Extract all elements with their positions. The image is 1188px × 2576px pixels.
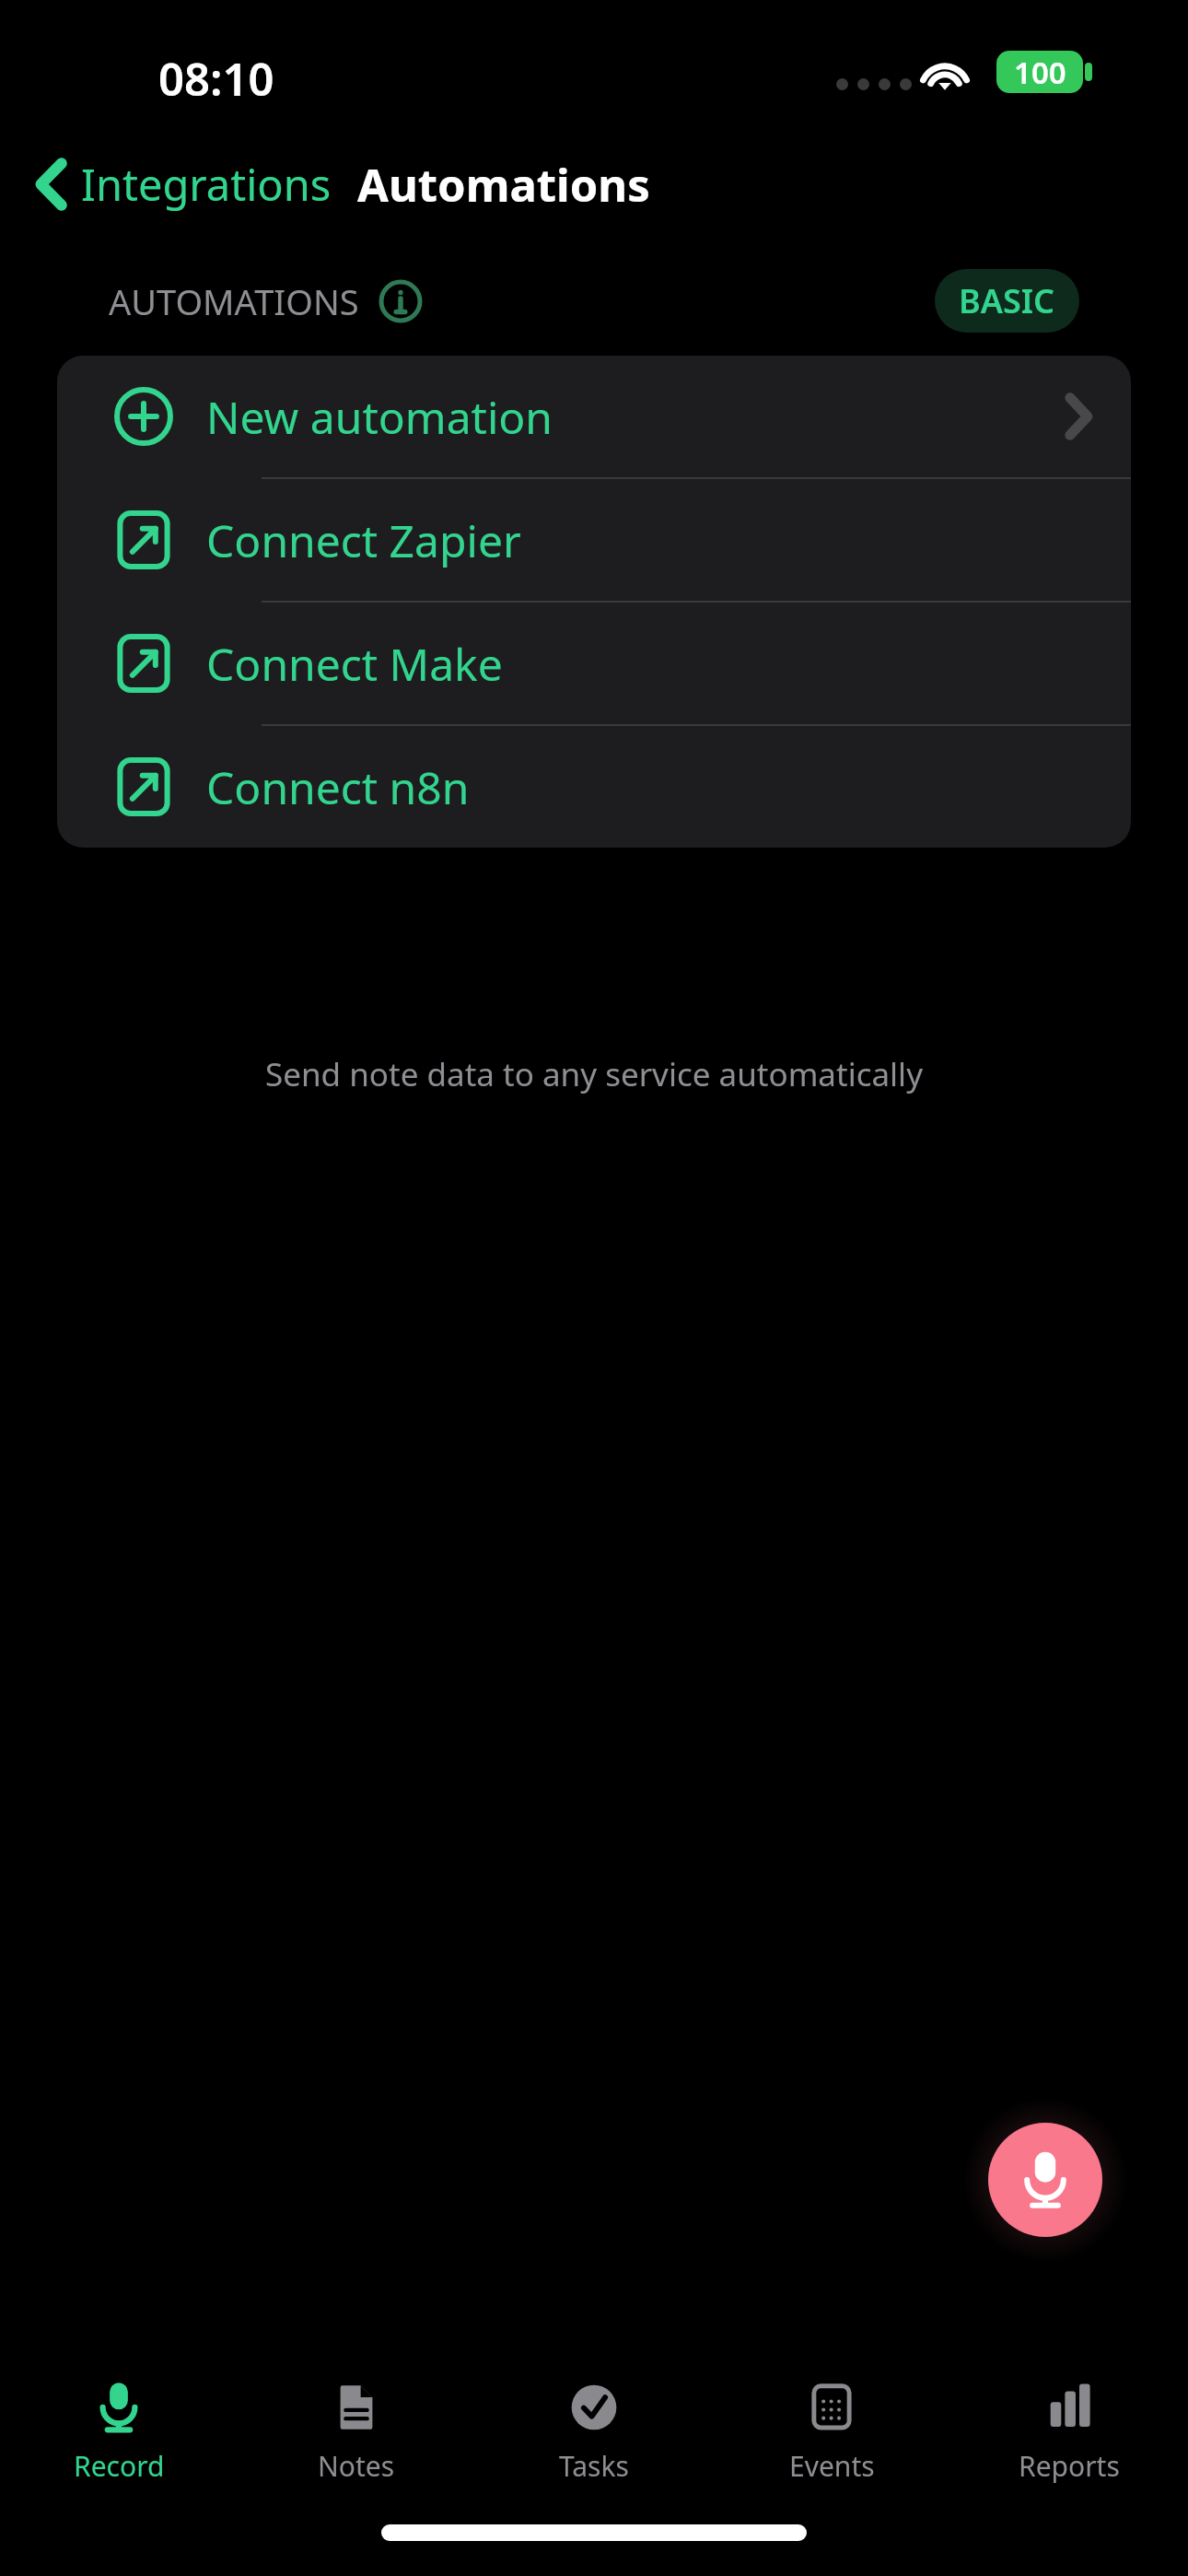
- staticText: 100: [1014, 52, 1066, 93]
- staticText: Tasks: [559, 2447, 629, 2485]
- button[interactable]: Connect n8n: [57, 726, 1131, 848]
- button[interactable]: About automations: [376, 276, 425, 326]
- button[interactable]: Record voice note: [988, 2123, 1102, 2237]
- staticText: Connect Zapier: [206, 510, 521, 570]
- button[interactable]: Tasks: [475, 2371, 713, 2494]
- staticText: Send note data to any service automatica…: [0, 1052, 1188, 1096]
- staticText: Connect Make: [206, 634, 503, 694]
- button[interactable]: BASIC: [935, 269, 1079, 333]
- button[interactable]: Events: [713, 2371, 950, 2494]
- staticText: Integrations: [81, 155, 332, 214]
- staticText: Connect n8n: [206, 757, 470, 817]
- button[interactable]: Notes: [238, 2371, 475, 2494]
- staticText: 08:10: [158, 48, 274, 110]
- staticText: New automation: [206, 387, 553, 447]
- staticText: BASIC: [959, 278, 1055, 323]
- button[interactable]: New automation: [57, 356, 1131, 477]
- staticText: Record: [74, 2447, 165, 2485]
- staticText: Automations: [357, 154, 650, 216]
- button[interactable]: Connect Zapier: [57, 479, 1131, 601]
- staticText: AUTOMATIONS: [109, 277, 359, 325]
- button[interactable]: Integrations: [28, 149, 339, 219]
- staticText: Notes: [318, 2447, 395, 2485]
- staticText: Events: [789, 2447, 875, 2485]
- button[interactable]: Reports: [950, 2371, 1188, 2494]
- staticText: Reports: [1019, 2447, 1120, 2485]
- button[interactable]: Connect Make: [57, 603, 1131, 724]
- button[interactable]: Record: [0, 2371, 238, 2494]
